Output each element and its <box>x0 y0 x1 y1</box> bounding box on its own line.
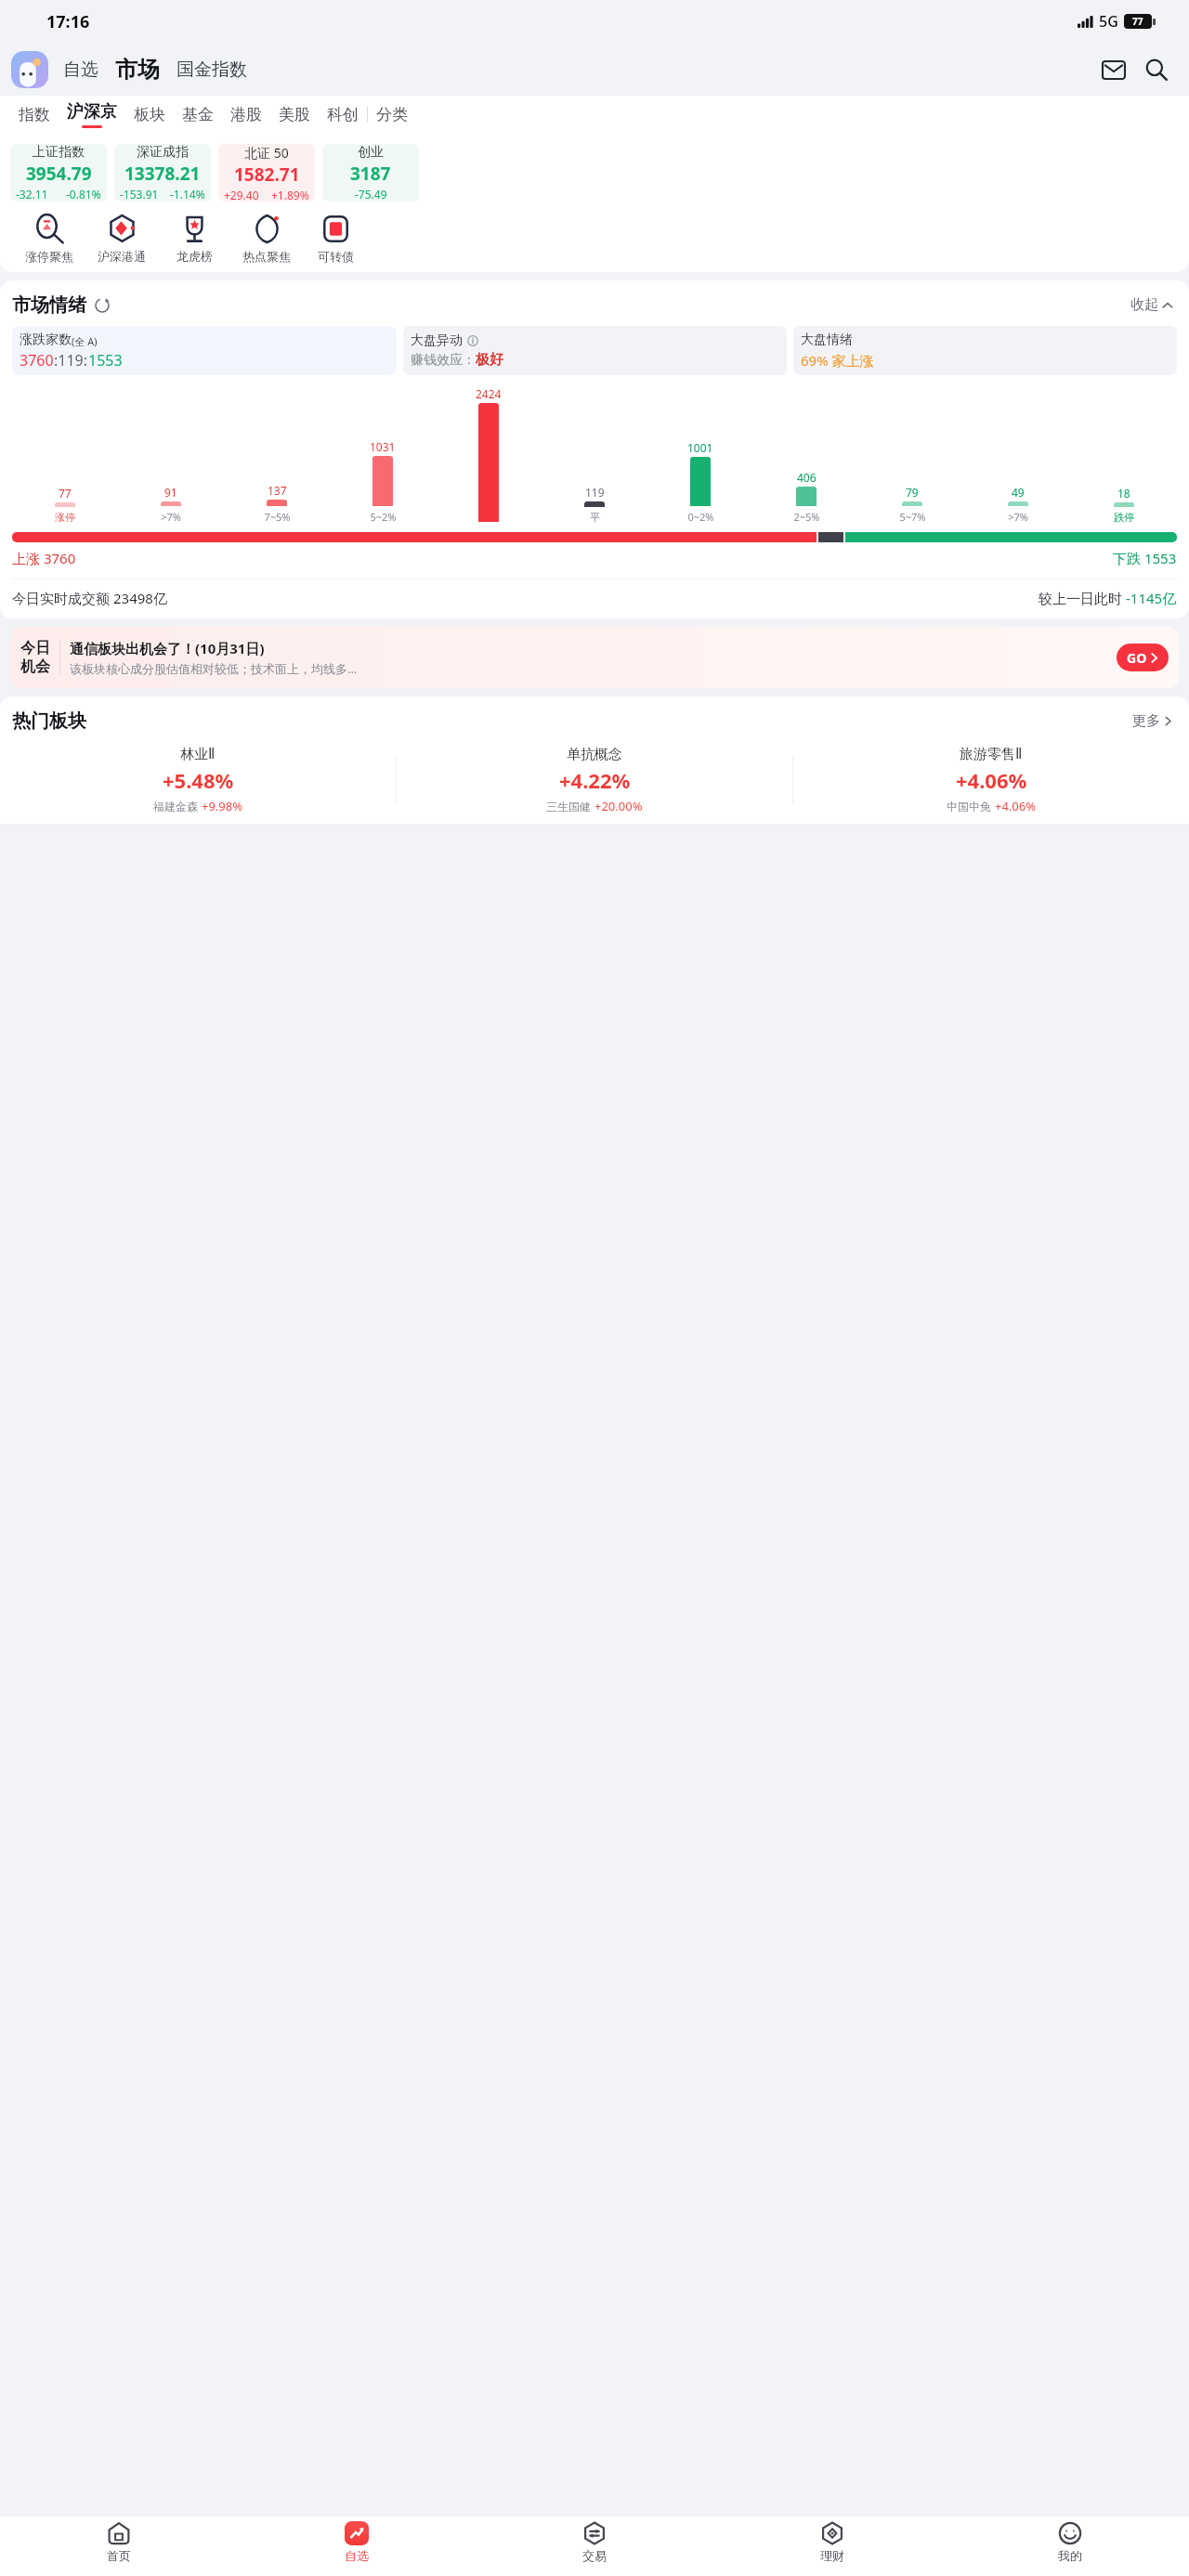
staticText: (全 A) <box>72 334 98 348</box>
button[interactable]: 我的 <box>951 2521 1189 2576</box>
staticText: 3187 <box>350 162 391 186</box>
button[interactable]: 理财 <box>713 2521 951 2576</box>
staticText: +4.06% <box>956 766 1027 794</box>
staticText: 自选 <box>345 2548 369 2563</box>
button[interactable]: Profile <box>11 51 48 88</box>
staticText: 上证指数 <box>33 144 85 161</box>
button[interactable]: 涨停聚焦 <box>13 214 85 264</box>
button[interactable]: 指数 <box>10 96 59 134</box>
button[interactable]: 自选 <box>61 55 100 85</box>
staticText: 热门板块 <box>12 709 86 733</box>
staticText: 2424 <box>476 386 502 401</box>
staticText: 中国中免 <box>947 800 991 813</box>
staticText: 理财 <box>820 2548 844 2563</box>
staticText: 龙虎榜 <box>176 249 213 264</box>
staticText: 涨停 <box>55 511 75 524</box>
button[interactable]: 单抗概念 <box>397 746 792 814</box>
staticText: 旅游零售Ⅱ <box>960 746 1023 763</box>
button[interactable]: GO <box>1117 644 1169 671</box>
staticText: 市场情绪 <box>12 293 86 317</box>
button[interactable]: 沪深港通 <box>85 214 158 264</box>
staticText: 13378.21 <box>124 162 201 186</box>
staticText: 沪深京 <box>67 101 117 123</box>
staticText: 119 <box>585 485 605 500</box>
staticText: >7% <box>1008 510 1028 524</box>
button[interactable]: 首页 <box>0 2521 238 2576</box>
staticText: +20.00% <box>594 798 643 814</box>
staticText: 7~5% <box>264 510 291 524</box>
button[interactable]: 板块 <box>125 96 174 134</box>
staticText: 热点聚焦 <box>242 249 291 264</box>
button[interactable]: 沪深京 <box>59 96 125 134</box>
staticText: 国金指数 <box>176 59 247 81</box>
button[interactable]: 深证成指 <box>114 144 211 202</box>
button[interactable]: 大盘情绪 <box>793 326 1177 375</box>
button[interactable]: 收起 <box>1127 293 1177 318</box>
staticText: 平 <box>590 511 600 524</box>
button[interactable]: 美股 <box>270 96 319 134</box>
button[interactable]: 交易 <box>476 2521 713 2576</box>
button[interactable]: 科创 <box>319 96 367 134</box>
staticText: 指数 <box>19 105 50 124</box>
staticText: 23498亿 <box>113 589 167 607</box>
staticText: 深证成指 <box>137 144 189 161</box>
staticText: +4.22% <box>559 766 631 794</box>
staticText: 分类 <box>376 105 408 124</box>
staticText: 涨停聚焦 <box>25 249 73 264</box>
button[interactable]: Refresh <box>93 296 111 315</box>
button[interactable]: 更多 <box>1129 709 1177 734</box>
button[interactable]: Messages <box>1098 54 1130 85</box>
button[interactable]: 今日 <box>10 627 1179 688</box>
staticText: 0~2% <box>687 510 714 524</box>
button[interactable]: 北证 50 <box>218 144 315 202</box>
staticText: GO <box>1127 649 1147 667</box>
staticText: 5~7% <box>899 510 926 524</box>
staticText: 市场 <box>115 56 160 84</box>
staticText: 福建金森 <box>153 800 198 813</box>
button[interactable]: 龙虎榜 <box>158 214 230 264</box>
staticText: 1582.71 <box>234 163 300 187</box>
button[interactable]: 国金指数 <box>175 55 249 85</box>
staticText: 机会 <box>20 657 50 676</box>
staticText: 1001 <box>687 440 713 455</box>
button[interactable]: 港股 <box>222 96 270 134</box>
button[interactable]: 自选 <box>238 2521 476 2576</box>
staticText: 3760 <box>20 350 54 371</box>
staticText: 18 <box>1117 486 1130 501</box>
staticText: 大盘异动 <box>411 332 463 349</box>
staticText: 上涨 3760 <box>12 549 76 567</box>
button[interactable]: 分类 <box>368 96 416 134</box>
staticText: 首页 <box>107 2548 131 2563</box>
button[interactable]: 可转债 <box>303 214 368 264</box>
staticText: 2~5% <box>793 510 820 524</box>
button[interactable]: 大盘异动 <box>403 326 787 375</box>
button[interactable]: 林业Ⅱ <box>0 746 396 814</box>
staticText: 1553 <box>88 350 123 371</box>
staticText: 77 <box>59 486 72 501</box>
button[interactable]: 热点聚焦 <box>230 214 303 264</box>
button[interactable]: 市场 <box>113 54 162 85</box>
staticText: 49 <box>1012 485 1025 500</box>
staticText: 可转债 <box>318 249 354 264</box>
staticText: 三生国健 <box>546 800 591 813</box>
staticText: 科创 <box>327 105 359 124</box>
button[interactable]: 涨跌家数 <box>12 326 397 375</box>
button[interactable]: 上证指数 <box>10 144 107 202</box>
button[interactable]: 基金 <box>174 96 222 134</box>
staticText: -75.49 <box>355 187 387 202</box>
staticText: 5~2% <box>370 510 397 524</box>
staticText: 林业Ⅱ <box>180 746 216 763</box>
button[interactable]: 旅游零售Ⅱ <box>793 746 1189 814</box>
button[interactable]: Search <box>1141 54 1172 85</box>
staticText: 板块 <box>134 105 165 124</box>
staticText: 5G <box>1099 11 1118 32</box>
staticText: 更多 <box>1132 712 1160 730</box>
staticText: 79 <box>906 485 919 500</box>
staticText: +9.98% <box>202 798 243 814</box>
staticText: 3954.79 <box>26 162 92 186</box>
staticText: -32.11 <box>16 187 48 202</box>
staticText: 69% 家上涨 <box>801 351 874 370</box>
staticText: 大盘情绪 <box>801 332 853 348</box>
staticText: 通信板块出机会了！(10月31日) <box>70 639 265 657</box>
button[interactable]: 创业 <box>322 144 419 202</box>
